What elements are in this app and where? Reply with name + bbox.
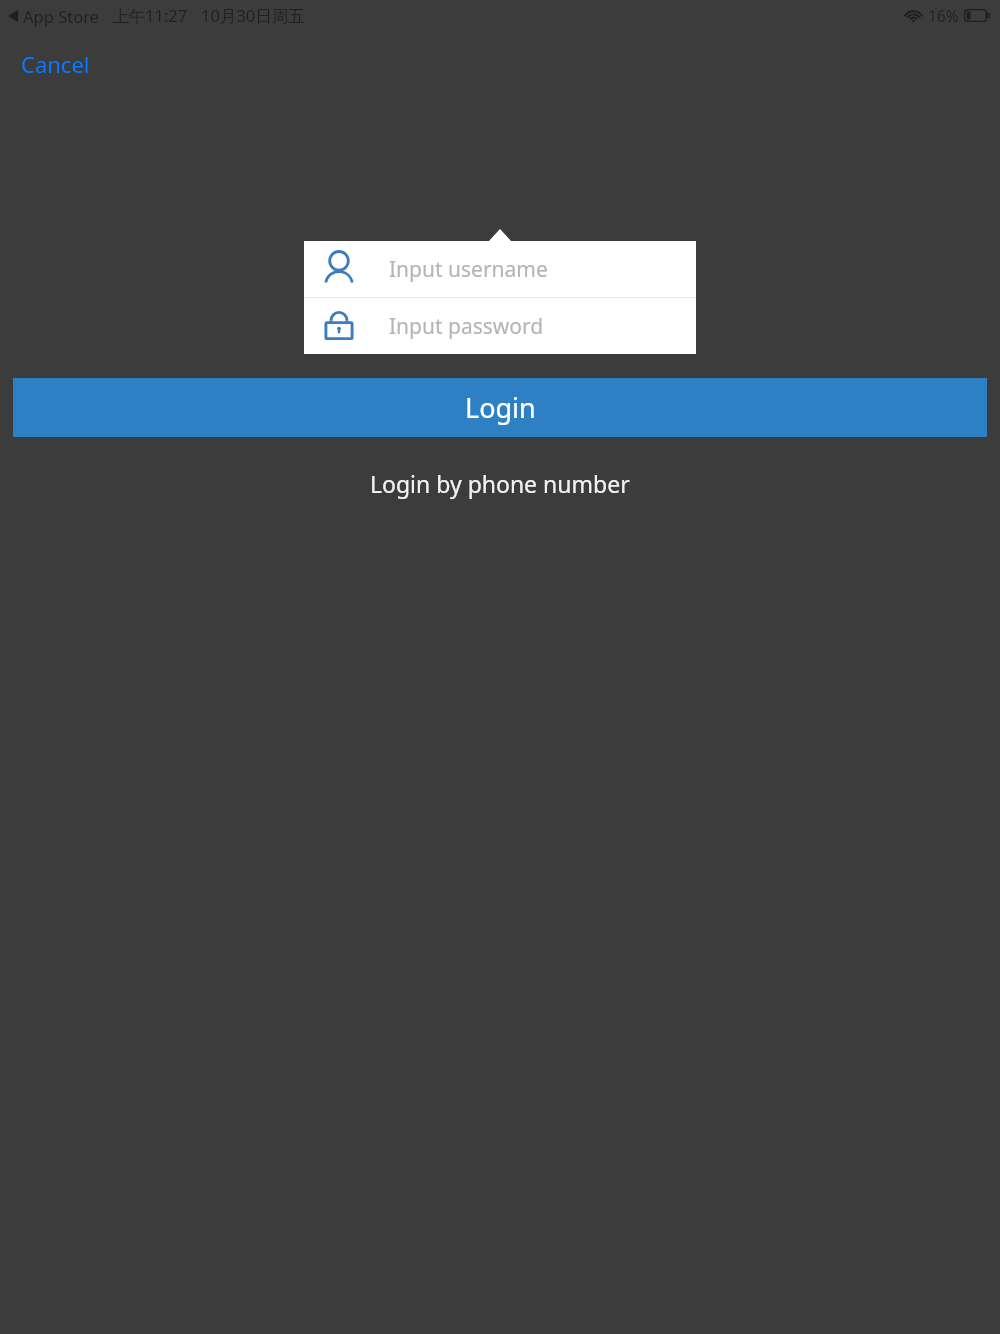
staticText: 上午11:27 (112, 4, 188, 27)
other: Password (322, 309, 356, 343)
staticText: 10月30日周五 (201, 4, 305, 27)
staticText: Login by phone number (370, 468, 630, 499)
button[interactable]: Password (304, 298, 696, 354)
staticText: Cancel (21, 49, 90, 79)
button[interactable]: Login (13, 378, 987, 437)
staticText: App Store (23, 5, 99, 27)
staticText: Input username (389, 255, 548, 284)
button[interactable]: Login by phone number (350, 462, 650, 505)
staticText: Login (465, 389, 536, 426)
other: Username (320, 250, 358, 288)
button[interactable]: Cancel (8, 42, 103, 86)
staticText: Input password (389, 312, 544, 341)
staticText: 16% (928, 5, 959, 26)
button[interactable]: Username (304, 241, 696, 297)
